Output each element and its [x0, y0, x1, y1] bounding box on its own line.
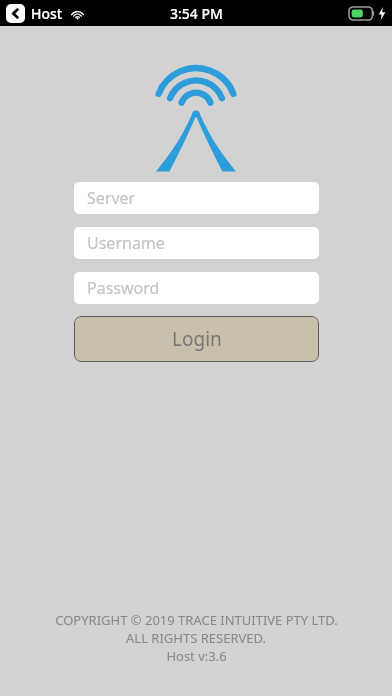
staticText: Server	[87, 187, 136, 209]
staticText: Login	[172, 326, 222, 352]
staticText: COPYRIGHT © 2019 TRACE INTUITIVE PTY LTD…	[55, 611, 338, 629]
staticText: 3:54 PM	[170, 4, 223, 23]
staticText: Host	[31, 4, 63, 23]
staticText: Password	[87, 277, 160, 299]
staticText: Host v:3.6	[166, 647, 227, 665]
staticText: ALL RIGHTS RESERVED.	[126, 629, 266, 647]
button[interactable]: Server	[74, 182, 319, 214]
button[interactable]: Username	[74, 227, 319, 259]
staticText: Username	[87, 232, 165, 254]
button[interactable]: Password	[74, 272, 319, 304]
button[interactable]: Back to Host	[6, 4, 85, 23]
button[interactable]: Login	[74, 316, 319, 362]
